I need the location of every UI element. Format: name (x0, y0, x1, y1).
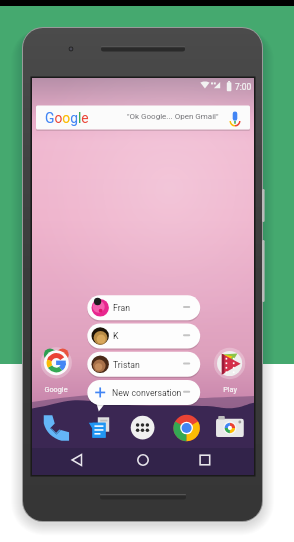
staticText: New conversation (112, 388, 182, 398)
staticText: Google (16, 385, 96, 542)
staticText: 7:00 (235, 82, 252, 92)
staticText: Google (45, 110, 89, 126)
staticText: Play (190, 385, 270, 542)
staticText: "Ok Google... Open Gmail" (127, 112, 219, 121)
staticText: K (113, 331, 119, 341)
staticText: Fran (113, 303, 130, 313)
staticText: Tristan (113, 360, 140, 370)
